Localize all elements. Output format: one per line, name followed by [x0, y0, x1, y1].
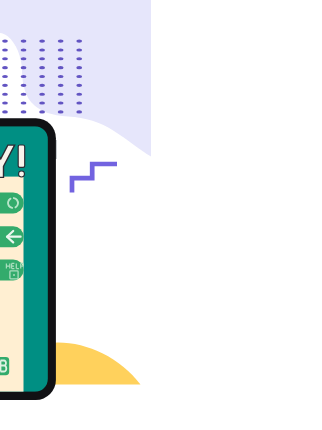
button[interactable]: Bookmarks — [0, 357, 10, 376]
button[interactable]: Back — [0, 226, 24, 248]
button[interactable]: Help — [0, 259, 24, 281]
button[interactable]: Refresh — [0, 192, 24, 214]
